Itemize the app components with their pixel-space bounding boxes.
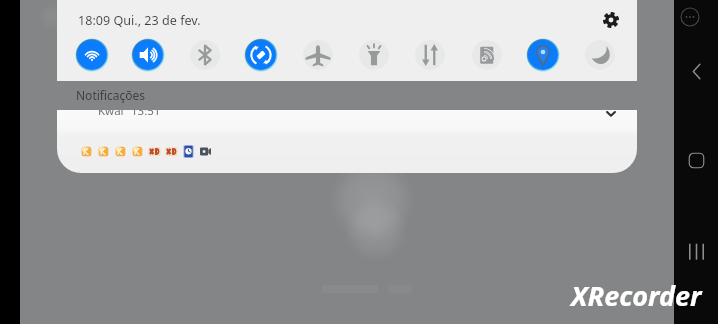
- button[interactable]: Auto rotate: [244, 38, 278, 72]
- button[interactable]: Back: [686, 61, 707, 82]
- button[interactable]: Do not disturb: [583, 38, 617, 72]
- button[interactable]: Airplane mode: [301, 38, 335, 72]
- button[interactable]: Bluetooth: [188, 38, 222, 72]
- staticText: XRecorder: [571, 277, 702, 314]
- button[interactable]: More options: [678, 5, 702, 29]
- button[interactable]: Smart View: [470, 38, 504, 72]
- staticText: 13:51: [131, 110, 161, 119]
- button[interactable]: Kwai: [57, 110, 637, 173]
- button[interactable]: Location: [526, 38, 560, 72]
- button[interactable]: Expand notification: [604, 110, 618, 121]
- staticText: Kwai: [98, 110, 124, 119]
- button[interactable]: Settings: [603, 12, 619, 28]
- button[interactable]: Wi-Fi: [75, 38, 109, 72]
- staticText: 18:09 Qui., 23 de fev.: [78, 12, 201, 29]
- button[interactable]: Home: [686, 150, 707, 171]
- button[interactable]: Sound: [131, 38, 165, 72]
- button[interactable]: Recent apps: [686, 241, 707, 262]
- button[interactable]: Mobile data: [413, 38, 447, 72]
- staticText: Notificações: [76, 87, 146, 103]
- button[interactable]: Flashlight: [357, 38, 391, 72]
